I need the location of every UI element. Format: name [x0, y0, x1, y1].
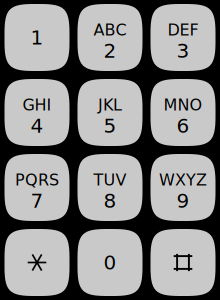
staticText: WXYZ: [159, 170, 207, 189]
staticText: 8: [103, 189, 116, 212]
button[interactable]: Pound: [150, 229, 215, 296]
button[interactable]: 3 DEF: [150, 4, 215, 71]
staticText: 3: [176, 39, 189, 62]
button[interactable]: 2 ABC: [77, 4, 142, 71]
staticText: 9: [176, 189, 189, 212]
staticText: 1: [30, 26, 43, 49]
staticText: ABC: [93, 20, 126, 39]
staticText: PQRS: [15, 170, 59, 189]
button[interactable]: 6 MNO: [150, 79, 215, 146]
staticText: 5: [103, 114, 116, 137]
staticText: 0: [103, 251, 116, 274]
staticText: 6: [176, 114, 189, 137]
staticText: 7: [30, 189, 43, 212]
button[interactable]: 5 JKL: [77, 79, 142, 146]
staticText: 2: [103, 39, 116, 62]
button[interactable]: Star: [4, 229, 69, 296]
button[interactable]: 0: [77, 229, 142, 296]
staticText: MNO: [163, 95, 202, 114]
staticText: TUV: [93, 170, 126, 189]
button[interactable]: 8 TUV: [77, 154, 142, 221]
button[interactable]: 9 WXYZ: [150, 154, 215, 221]
button[interactable]: 4 GHI: [4, 79, 69, 146]
staticText: GHI: [22, 95, 51, 114]
button[interactable]: 1: [4, 4, 69, 71]
staticText: JKL: [98, 95, 122, 114]
button[interactable]: 7 PQRS: [4, 154, 69, 221]
staticText: 4: [30, 114, 43, 137]
staticText: DEF: [167, 20, 198, 39]
